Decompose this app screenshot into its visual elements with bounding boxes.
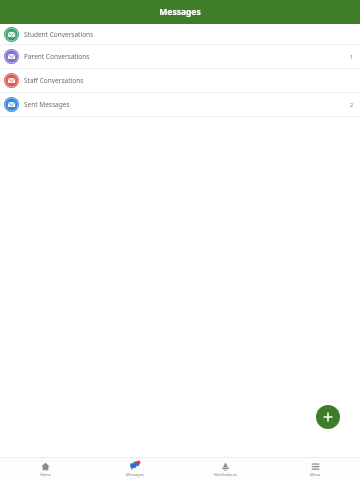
staticText: Sent Messages — [24, 100, 70, 109]
button[interactable]: Student Conversations — [0, 24, 360, 44]
staticText: Staff Conversations — [24, 76, 84, 85]
button[interactable]: Messages — [90, 461, 180, 477]
button[interactable]: Sent Messages — [0, 93, 360, 116]
button[interactable]: New message — [316, 405, 340, 429]
staticText: Student Conversations — [24, 30, 94, 39]
staticText: Messages — [126, 472, 144, 477]
button[interactable]: Home — [0, 462, 90, 477]
staticText: Home — [40, 472, 51, 477]
staticText: 2 — [350, 101, 354, 108]
button[interactable]: Notifications — [180, 462, 270, 477]
staticText: Parent Conversations — [24, 52, 90, 61]
button[interactable]: Parent Conversations — [0, 45, 360, 68]
button[interactable]: Menu — [270, 462, 360, 477]
button[interactable]: Staff Conversations — [0, 69, 360, 92]
staticText: 1 — [350, 53, 354, 60]
staticText: Menu — [310, 472, 321, 477]
staticText: Notifications — [214, 472, 237, 477]
staticText: Messages — [159, 6, 201, 18]
